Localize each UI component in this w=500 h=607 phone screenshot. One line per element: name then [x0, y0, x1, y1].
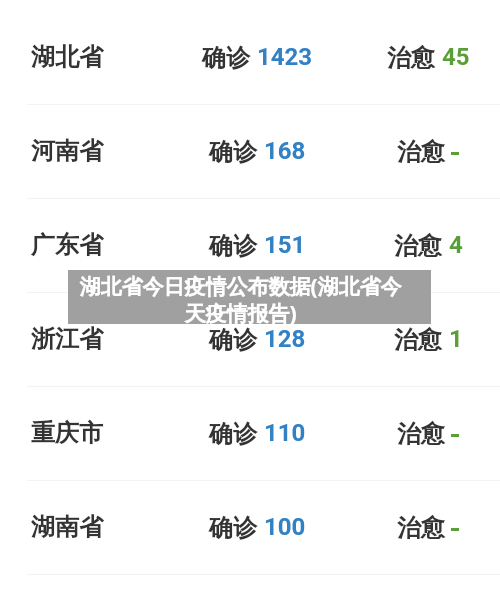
button[interactable]: 湖南省	[0, 481, 500, 574]
staticText: 河南省	[31, 136, 103, 166]
staticText: 重庆市	[31, 418, 103, 448]
staticText: 168	[264, 137, 306, 165]
staticText: 确诊	[202, 40, 257, 73]
staticText: 确诊	[209, 416, 264, 449]
staticText: 确诊	[209, 134, 264, 167]
staticText: 治愈	[394, 322, 449, 355]
staticText: 湖北省	[31, 42, 103, 72]
staticText: 治愈	[394, 228, 449, 261]
button[interactable]: 浙江省	[0, 293, 500, 386]
staticText: 151	[264, 231, 306, 259]
staticText: 治愈	[387, 40, 442, 73]
staticText: 110	[264, 419, 306, 447]
staticText: 浙江省	[31, 324, 103, 354]
button[interactable]: 湖北省	[0, 11, 500, 104]
staticText: 1	[449, 325, 463, 353]
staticText: 湖北省今日疫情公布数据(湖北省今天疫情报告)	[78, 272, 403, 328]
staticText: 治愈	[397, 416, 452, 449]
staticText: 确诊	[209, 510, 264, 543]
staticText: 45	[442, 43, 470, 71]
staticText: 确诊	[209, 322, 264, 355]
staticText: 128	[264, 325, 306, 353]
staticText: 确诊	[209, 228, 264, 261]
button[interactable]: 重庆市	[0, 387, 500, 480]
staticText: 100	[264, 513, 306, 541]
staticText: 湖南省	[31, 512, 103, 542]
button[interactable]: 广东省	[0, 199, 500, 292]
staticText: 治愈	[397, 510, 452, 543]
staticText: 4	[449, 231, 463, 259]
staticText: 1423	[257, 43, 313, 71]
staticText: 广东省	[31, 230, 103, 260]
button[interactable]: 河南省	[0, 105, 500, 198]
staticText: 治愈	[397, 134, 452, 167]
